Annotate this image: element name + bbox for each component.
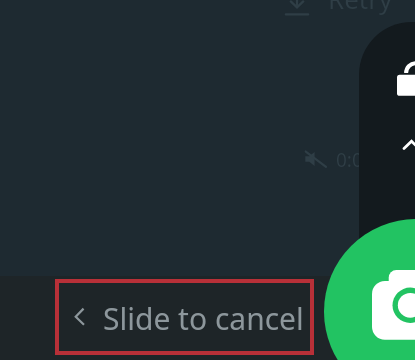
button[interactable]: Slide to cancel	[68, 296, 308, 334]
staticText: Retry	[328, 0, 393, 16]
button[interactable]: Lock recording	[359, 22, 415, 312]
staticText: Slide to cancel	[103, 298, 304, 336]
button[interactable]: Camera	[324, 219, 415, 360]
button[interactable]: Retry	[284, 0, 384, 20]
staticText: 0:05	[336, 147, 374, 173]
